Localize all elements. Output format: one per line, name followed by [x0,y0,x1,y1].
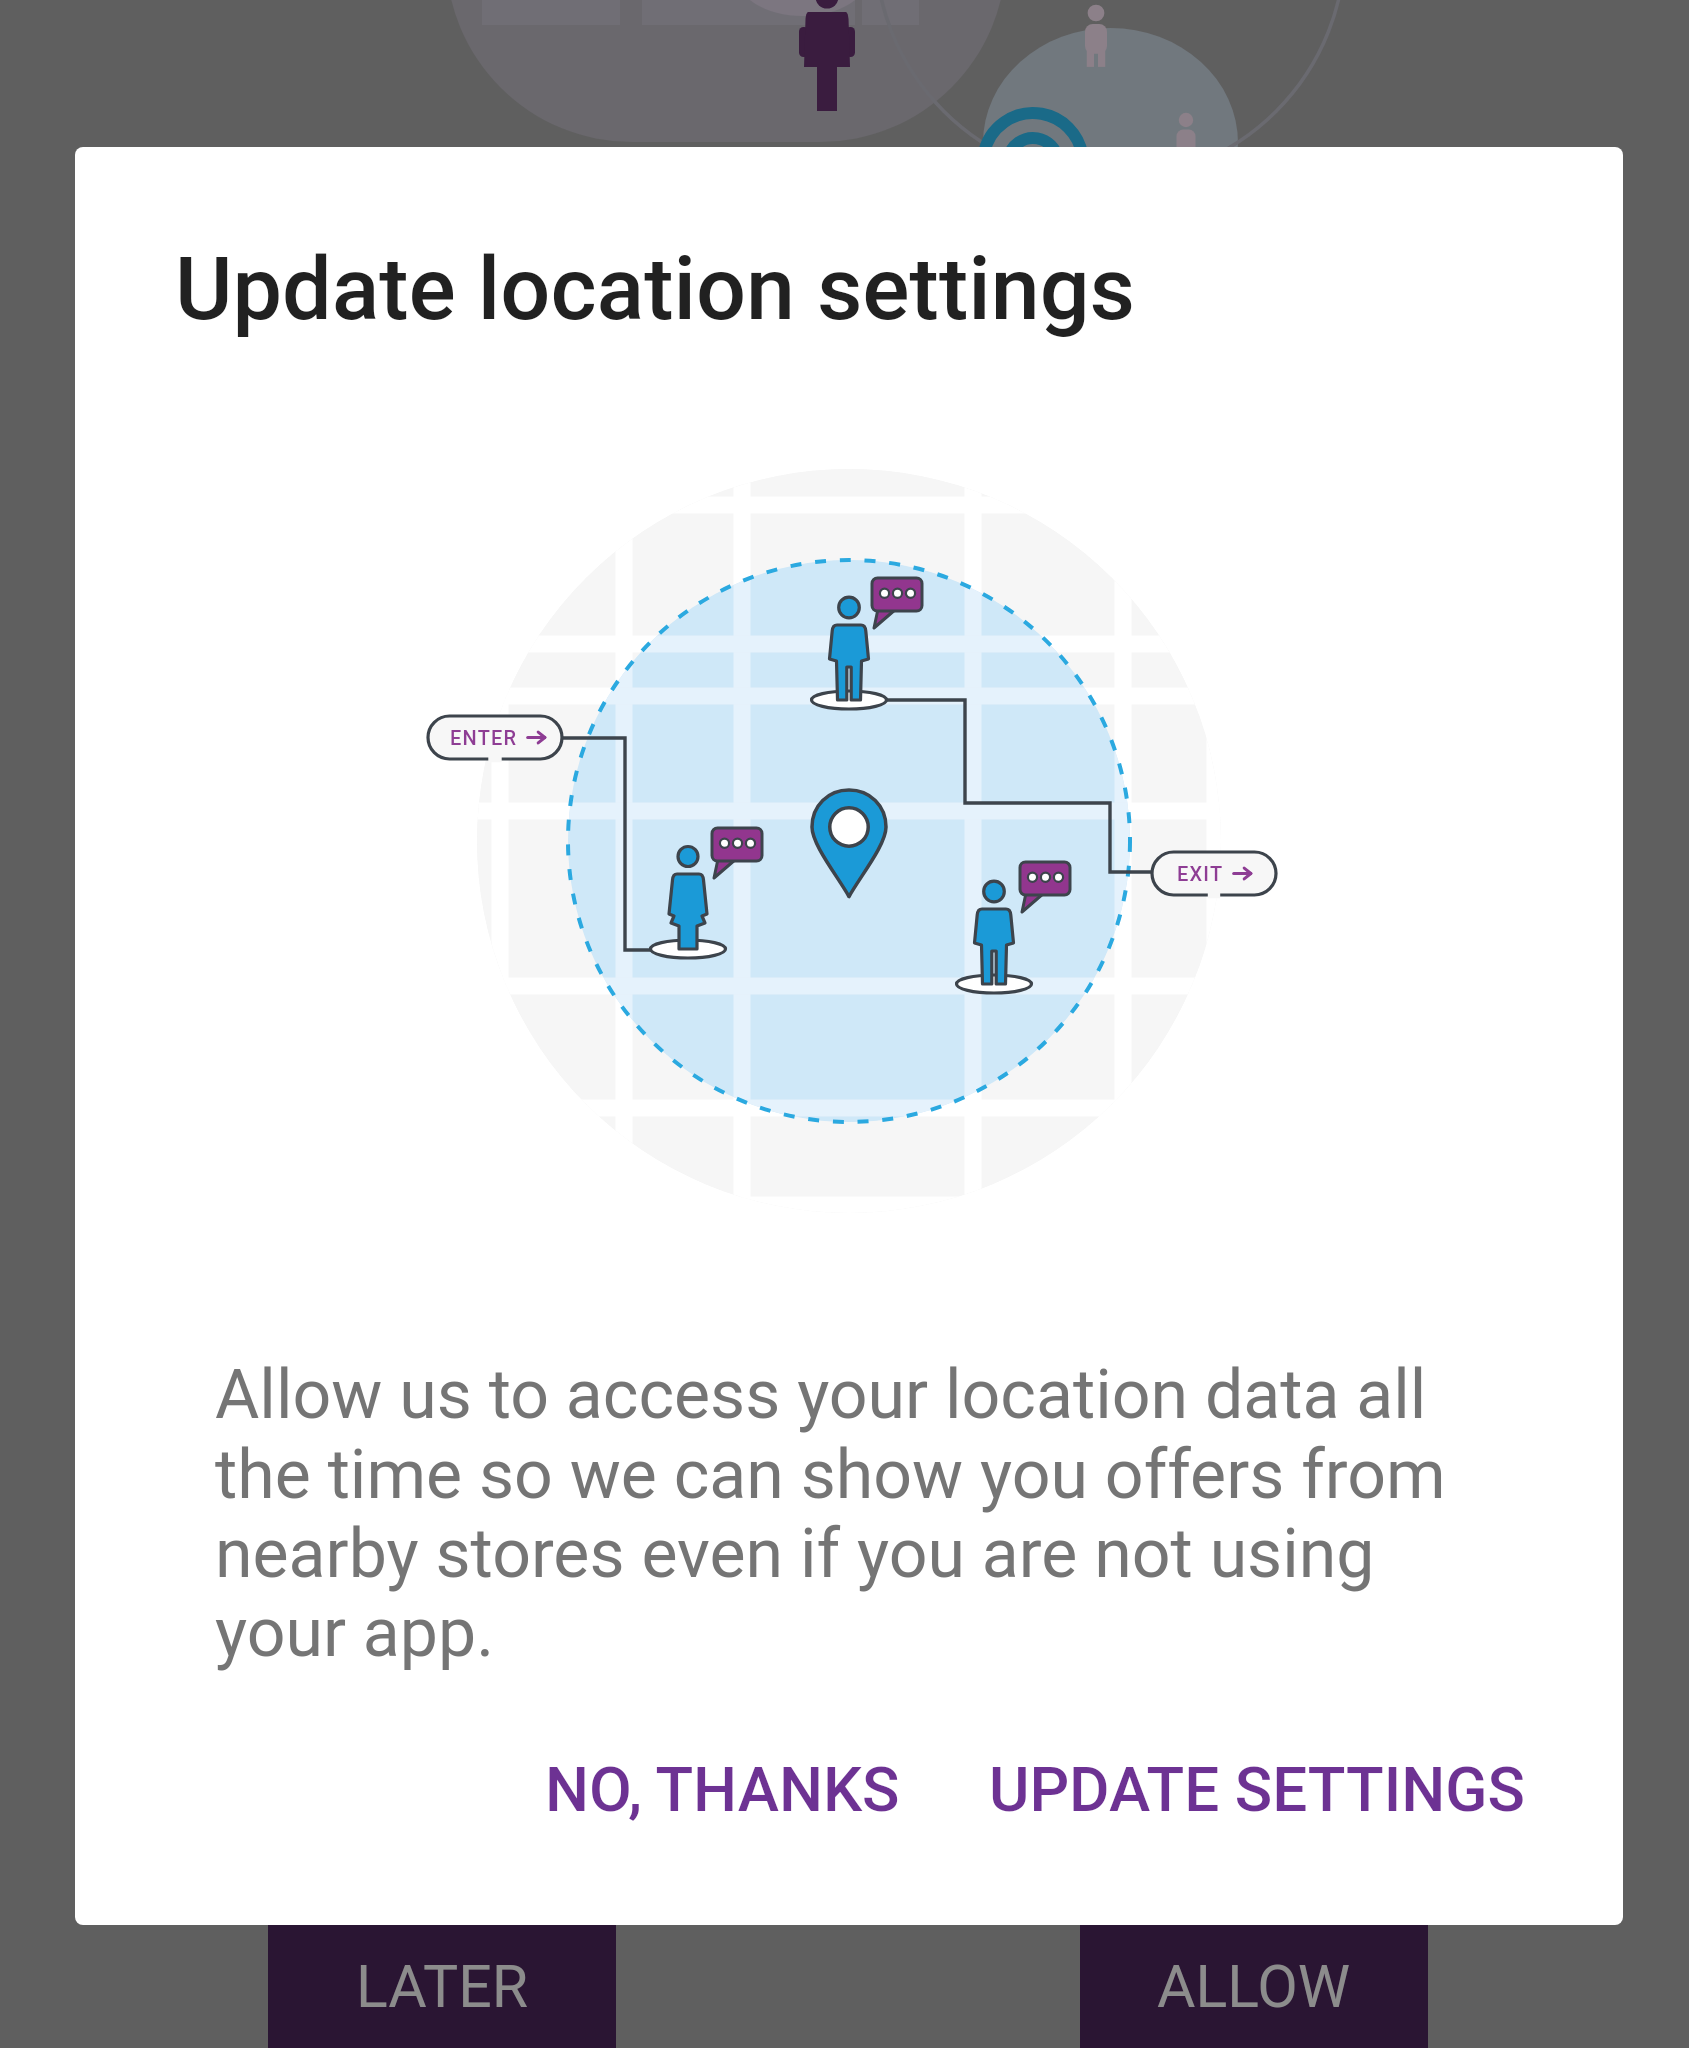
staticText: LATER [356,1952,529,2021]
staticText: Allow us to access your location data al… [215,1355,1470,1672]
staticText: Update location settings [175,237,1136,340]
button[interactable]: ALLOW [1080,1924,1428,2048]
staticText: NO, THANKS [545,1753,900,1826]
staticText: EXIT [1177,862,1224,885]
staticText: ENTER [450,726,518,749]
button[interactable]: NO, THANKS [509,1727,936,1852]
staticText: UPDATE SETTINGS [989,1753,1525,1826]
staticText: ALLOW [1157,1952,1351,2021]
button[interactable]: LATER [268,1924,616,2048]
button[interactable]: Dismiss dialog [0,0,1689,2048]
button[interactable]: UPDATE SETTINGS [953,1727,1561,1852]
